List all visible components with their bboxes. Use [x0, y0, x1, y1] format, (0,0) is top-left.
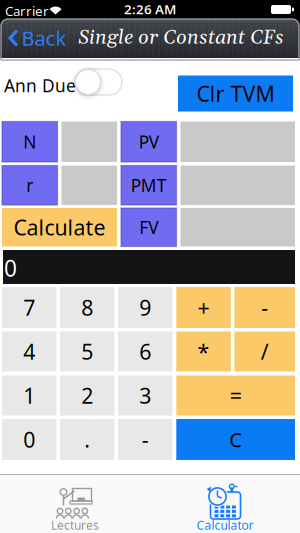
- staticText: r: [26, 174, 33, 197]
- button[interactable]: 2: [60, 375, 114, 415]
- staticText: C: [229, 426, 242, 453]
- staticText: .: [84, 425, 90, 454]
- button[interactable]: Lectures: [0, 475, 150, 533]
- button[interactable]: r: [2, 165, 57, 205]
- button[interactable]: =: [176, 375, 295, 415]
- staticText: *: [198, 337, 210, 366]
- button[interactable]: Clr TVM: [178, 75, 293, 111]
- staticText: Carrier: [5, 2, 49, 20]
- staticText: 1: [23, 381, 35, 410]
- staticText: Calculate: [13, 213, 105, 241]
- staticText: 4: [23, 337, 35, 366]
- staticText: 2:26 AM: [124, 0, 176, 18]
- staticText: 8: [81, 293, 93, 322]
- button[interactable]: 4: [2, 331, 56, 371]
- staticText: Ann Due: [4, 74, 76, 97]
- button[interactable]: 8: [60, 287, 114, 328]
- button[interactable]: 9: [118, 287, 172, 328]
- staticText: -: [261, 293, 268, 322]
- staticText: PMT: [131, 174, 167, 197]
- staticText: Single or Constant CFs: [78, 25, 284, 51]
- button[interactable]: FV: [121, 208, 176, 246]
- button[interactable]: [75, 69, 122, 95]
- button[interactable]: PMT: [121, 165, 176, 205]
- button[interactable]: .: [60, 419, 114, 460]
- button[interactable]: 5: [60, 331, 114, 371]
- staticText: Clr TVM: [196, 79, 274, 108]
- button[interactable]: N: [2, 121, 57, 162]
- staticText: -: [142, 425, 149, 454]
- button[interactable]: 1: [2, 375, 56, 415]
- staticText: 5: [81, 337, 93, 366]
- button[interactable]: 7: [2, 287, 56, 328]
- button[interactable]: C: [176, 419, 295, 460]
- staticText: 3: [139, 381, 151, 410]
- staticText: +: [198, 293, 210, 322]
- staticText: 6: [139, 337, 151, 366]
- button[interactable]: +: [176, 287, 231, 328]
- button[interactable]: 6: [118, 331, 172, 371]
- button[interactable]: 0: [2, 419, 56, 460]
- button[interactable]: Back: [4, 23, 70, 53]
- button[interactable]: Calculate: [2, 208, 117, 246]
- staticText: Calculator: [196, 517, 253, 533]
- staticText: /: [261, 337, 269, 366]
- staticText: 2: [81, 381, 93, 410]
- button[interactable]: 3: [118, 375, 172, 415]
- staticText: 7: [23, 293, 35, 322]
- staticText: PV: [139, 130, 159, 153]
- staticText: N: [23, 130, 36, 153]
- button[interactable]: /: [234, 331, 295, 371]
- button[interactable]: PV: [121, 121, 176, 162]
- staticText: Back: [21, 25, 66, 51]
- button[interactable]: -: [118, 419, 172, 460]
- staticText: 9: [139, 293, 151, 322]
- button[interactable]: -: [234, 287, 295, 328]
- button[interactable]: *: [176, 331, 231, 371]
- staticText: Lectures: [51, 517, 99, 533]
- staticText: =: [230, 381, 242, 410]
- staticText: FV: [139, 216, 158, 239]
- staticText: 0: [4, 253, 17, 283]
- staticText: 0: [23, 425, 35, 454]
- button[interactable]: Calculator: [150, 475, 300, 533]
